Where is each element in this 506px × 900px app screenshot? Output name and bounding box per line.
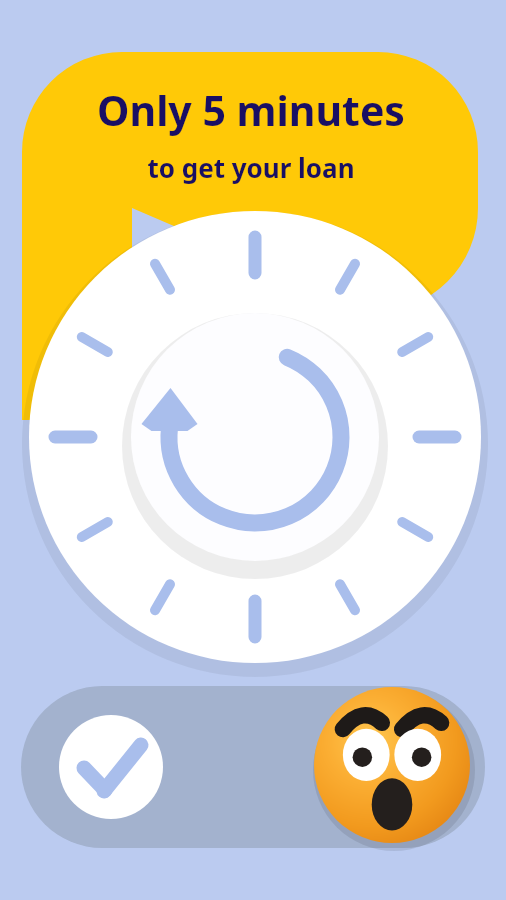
staticText: to get your loan — [12, 150, 490, 185]
staticText: Only 5 minutes — [12, 82, 490, 138]
button[interactable]: Fast approval toggle — [21, 686, 485, 848]
